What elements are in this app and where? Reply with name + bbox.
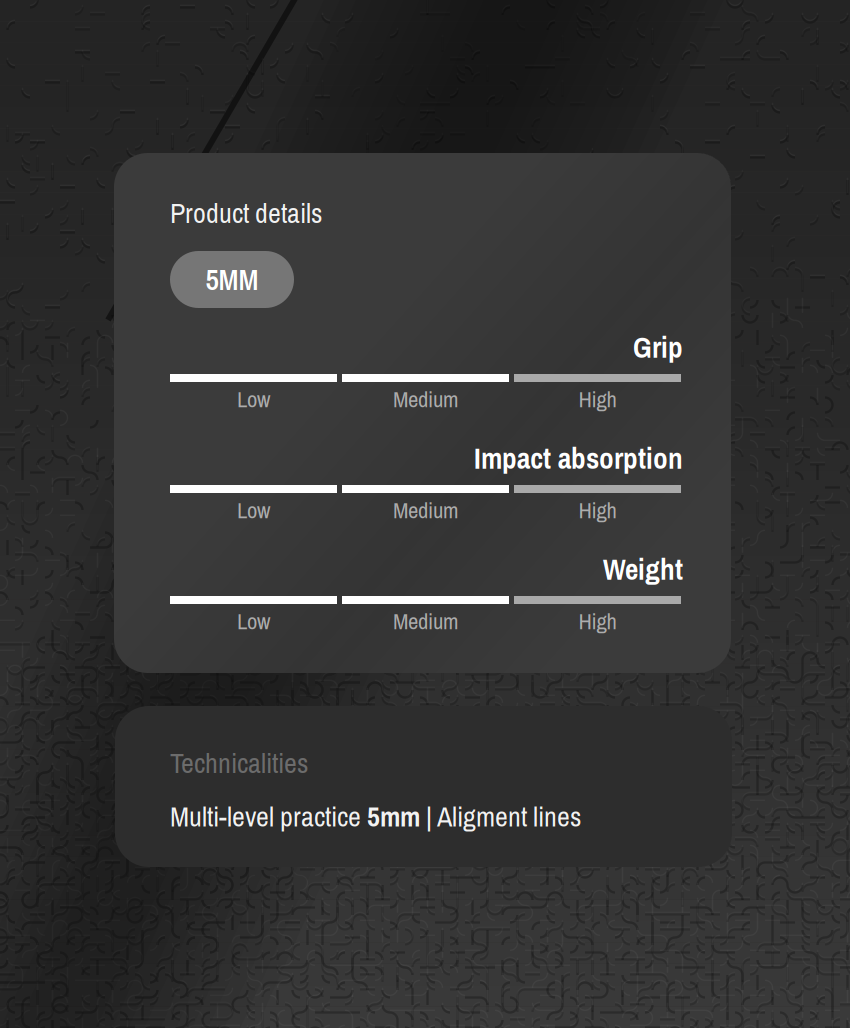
staticText: Impact absorption (474, 438, 683, 478)
staticText: Low (237, 606, 270, 636)
staticText: Grip (633, 327, 683, 367)
staticText: Low (237, 384, 270, 414)
staticText: High (578, 606, 616, 636)
staticText: Weight (603, 549, 683, 589)
staticText: 5MM (205, 260, 258, 299)
staticText: Medium (393, 495, 458, 525)
staticText: Medium (393, 606, 458, 636)
staticText: Low (237, 495, 270, 525)
staticText: High (578, 384, 616, 414)
staticText: High (578, 495, 616, 525)
staticText: Multi-level practice 5mm | Aligment line… (170, 798, 581, 835)
staticText: Medium (393, 384, 458, 414)
staticText: Product details (170, 194, 322, 232)
button[interactable]: 5MM (170, 251, 294, 308)
staticText: Technicalities (170, 744, 308, 782)
